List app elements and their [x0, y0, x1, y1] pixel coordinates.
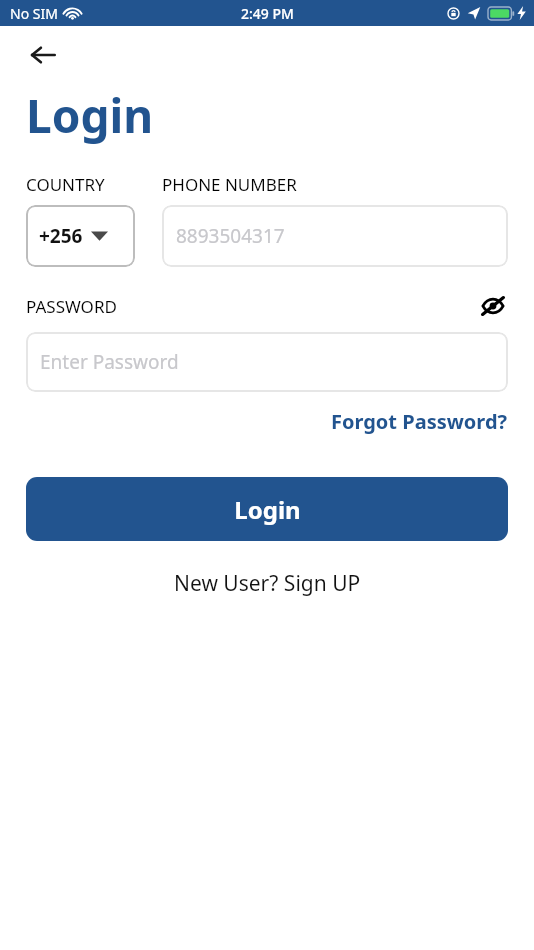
staticText: PASSWORD	[26, 295, 117, 318]
button[interactable]: Toggle password visibility	[476, 289, 510, 323]
staticText: Forgot Password?	[331, 408, 508, 435]
button[interactable]: Forgot Password?	[331, 404, 508, 439]
button[interactable]: Back	[22, 34, 64, 76]
staticText: Login	[234, 493, 301, 526]
button[interactable]: New User? Sign UP	[162, 565, 373, 602]
staticText: No SIM	[10, 4, 58, 23]
staticText: 2:49 PM	[241, 4, 294, 23]
staticText: 8893504317	[176, 223, 285, 249]
staticText: COUNTRY	[26, 173, 105, 196]
staticText: Login	[26, 84, 154, 147]
button[interactable]: 8893504317	[162, 205, 508, 267]
button[interactable]: +256	[26, 205, 135, 267]
staticText: PHONE NUMBER	[162, 173, 297, 196]
button[interactable]: Enter Password	[26, 332, 508, 392]
staticText: +256	[39, 223, 83, 249]
button[interactable]: Login	[26, 477, 508, 541]
staticText: New User? Sign UP	[174, 569, 361, 598]
staticText: Enter Password	[40, 349, 179, 375]
